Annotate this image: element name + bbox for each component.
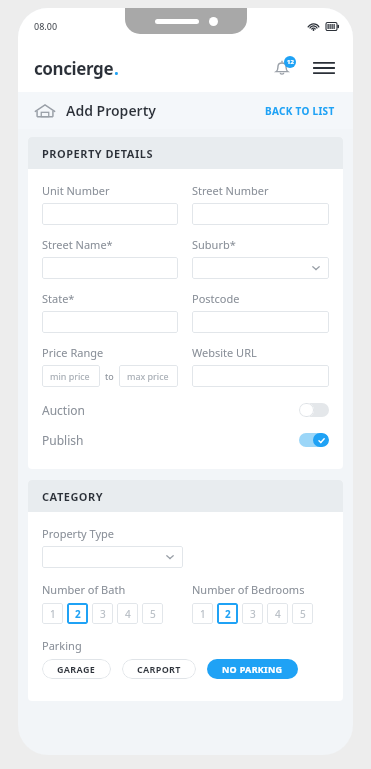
staticText: Price Range: [42, 345, 104, 360]
staticText: Parking: [42, 638, 82, 653]
staticText: max price: [127, 370, 169, 382]
button[interactable]: [42, 203, 178, 225]
staticText: CATEGORY: [42, 489, 104, 504]
staticText: BACK TO LIST: [265, 104, 335, 118]
button[interactable]: 2: [217, 603, 238, 624]
button[interactable]: [192, 365, 329, 387]
staticText: to: [105, 370, 114, 382]
staticText: 3: [100, 607, 106, 621]
button[interactable]: min price: [42, 365, 100, 387]
button[interactable]: CARPORT: [122, 659, 196, 679]
staticText: 4: [125, 607, 131, 621]
staticText: 5: [150, 607, 156, 621]
staticText: GARAGE: [57, 663, 96, 675]
staticText: Suburb*: [192, 237, 236, 252]
button[interactable]: [42, 311, 178, 333]
staticText: Add Property: [66, 101, 157, 120]
button[interactable]: 1: [192, 603, 213, 624]
staticText: Postcode: [192, 291, 240, 306]
staticText: Unit Number: [42, 183, 110, 198]
button[interactable]: [42, 257, 178, 279]
button[interactable]: Publish: [42, 425, 329, 455]
button[interactable]: 2: [67, 603, 88, 624]
staticText: 5: [300, 607, 306, 621]
staticText: CARPORT: [137, 663, 181, 675]
button[interactable]: NO PARKING: [207, 659, 298, 679]
button[interactable]: BACK TO LIST: [261, 100, 339, 122]
staticText: 3: [250, 607, 256, 621]
staticText: Number of Bath: [42, 582, 126, 597]
button[interactable]: [42, 546, 183, 568]
staticText: 2: [225, 607, 231, 621]
button[interactable]: 3: [92, 603, 113, 624]
staticText: 12: [287, 58, 294, 66]
staticText: 1: [50, 607, 56, 621]
staticText: 08.00: [34, 20, 58, 32]
button[interactable]: 3: [242, 603, 263, 624]
button[interactable]: 1: [42, 603, 63, 624]
button[interactable]: 4: [117, 603, 138, 624]
staticText: Street Number: [192, 183, 269, 198]
button[interactable]: GARAGE: [42, 659, 111, 679]
button[interactable]: 5: [142, 603, 163, 624]
staticText: min price: [50, 370, 90, 382]
button[interactable]: 4: [267, 603, 288, 624]
staticText: State*: [42, 291, 75, 306]
staticText: 4: [275, 607, 281, 621]
staticText: Number of Bedrooms: [192, 582, 305, 597]
button[interactable]: [192, 203, 329, 225]
staticText: Publish: [42, 432, 84, 448]
staticText: Auction: [42, 402, 85, 418]
staticText: NO PARKING: [222, 663, 283, 675]
staticText: concierge: [34, 57, 114, 80]
button[interactable]: [192, 257, 329, 279]
staticText: 2: [75, 607, 81, 621]
button[interactable]: Auction: [42, 395, 329, 425]
staticText: PROPERTY DETAILS: [42, 146, 153, 161]
button[interactable]: Menu: [309, 53, 339, 83]
button[interactable]: max price: [119, 365, 178, 387]
button[interactable]: 5: [292, 603, 313, 624]
staticText: 1: [200, 607, 206, 621]
staticText: Street Name*: [42, 237, 113, 252]
staticText: Website URL: [192, 345, 257, 360]
staticText: .: [114, 57, 119, 80]
staticText: Property Type: [42, 526, 115, 541]
button[interactable]: Notifications: [267, 53, 297, 83]
button[interactable]: [192, 311, 329, 333]
